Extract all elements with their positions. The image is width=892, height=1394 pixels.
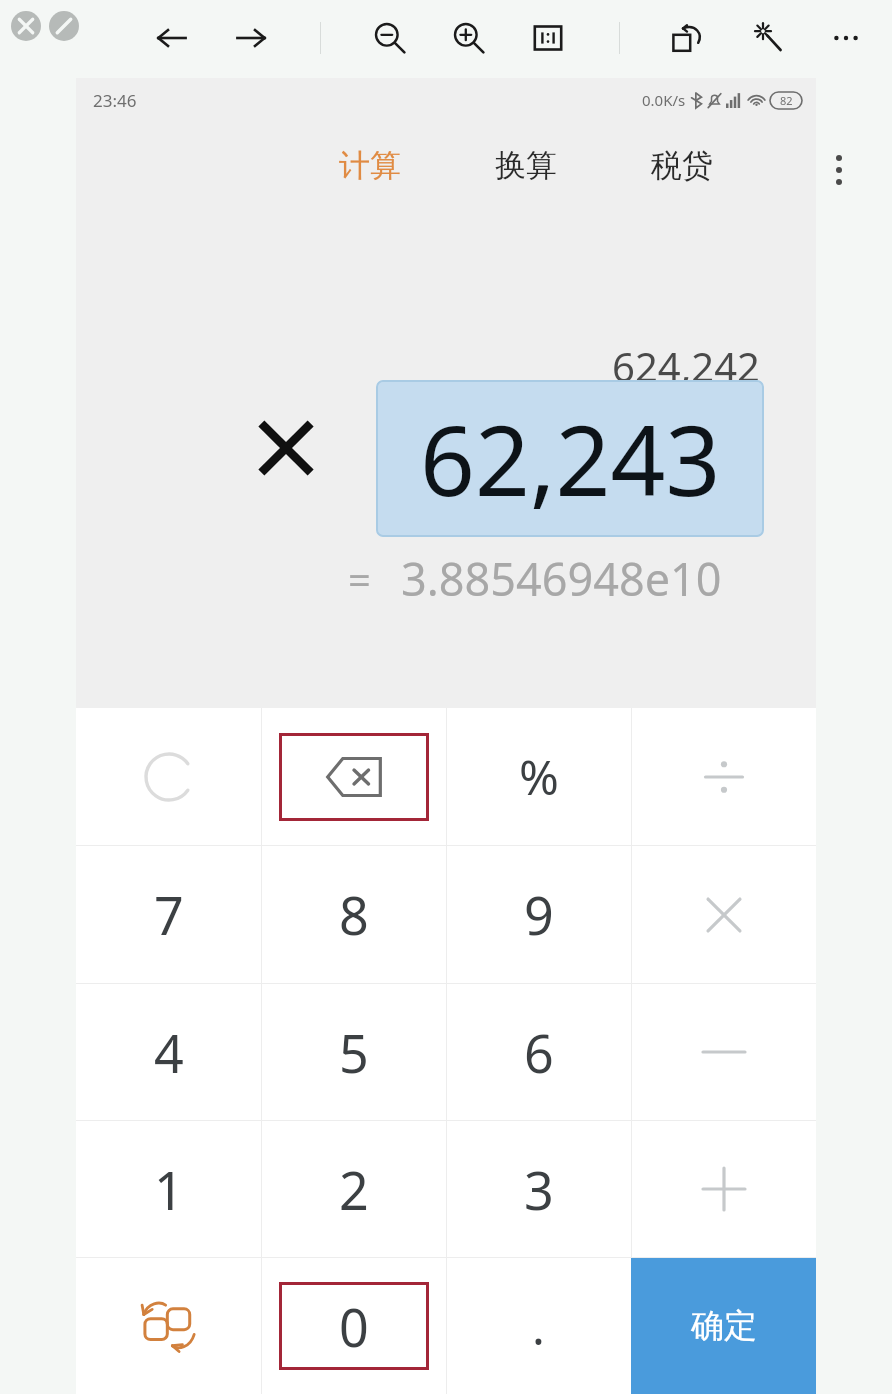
staticText: 0 — [339, 1291, 369, 1362]
button[interactable]: 7 — [76, 846, 261, 983]
button[interactable] — [631, 708, 816, 845]
button[interactable]: Actual size — [524, 14, 572, 62]
staticText: 计算 — [339, 146, 401, 185]
button[interactable]: Backspace — [261, 708, 446, 845]
staticText: 1 — [154, 1154, 184, 1225]
staticText: 确定 — [691, 1305, 757, 1347]
button[interactable]: Forward — [227, 14, 275, 62]
staticText: 3 — [524, 1154, 554, 1225]
staticText: 9 — [524, 879, 554, 950]
staticText: 624,242 — [612, 339, 760, 393]
button[interactable]: Back — [148, 14, 196, 62]
button[interactable]: 9 — [446, 846, 631, 983]
button[interactable]: 计算 — [331, 132, 409, 198]
button[interactable]: Zoom out — [366, 14, 414, 62]
button[interactable]: . — [446, 1258, 631, 1394]
button[interactable]: Effects — [743, 14, 791, 62]
staticText: 5 — [339, 1017, 369, 1088]
button[interactable]: Zoom in — [445, 14, 493, 62]
button[interactable]: Disable — [49, 11, 79, 41]
button[interactable] — [76, 708, 261, 845]
button[interactable] — [631, 1121, 816, 1257]
staticText: 62,243 — [420, 393, 721, 524]
staticText: 2 — [339, 1154, 369, 1225]
button[interactable]: 5 — [261, 984, 446, 1120]
staticText: 82 — [780, 93, 793, 108]
staticText: 税贷 — [651, 146, 713, 185]
button[interactable]: 62,243 — [376, 380, 764, 537]
staticText: 7 — [154, 879, 184, 950]
button[interactable] — [631, 846, 816, 983]
staticText: 6 — [524, 1017, 554, 1088]
staticText: 0.0K/s — [642, 90, 686, 110]
staticText: 4 — [154, 1017, 184, 1088]
button[interactable]: 换算 — [487, 132, 565, 198]
staticText: 换算 — [495, 146, 557, 185]
button[interactable]: Convert — [76, 1258, 261, 1394]
button[interactable]: Close — [11, 11, 41, 41]
button[interactable]: 8 — [261, 846, 446, 983]
button[interactable]: % — [446, 708, 631, 845]
button[interactable]: 4 — [76, 984, 261, 1120]
staticText: 23:46 — [93, 89, 137, 112]
staticText: . — [532, 1294, 545, 1359]
button[interactable]: 税贷 — [643, 132, 721, 198]
button[interactable] — [631, 984, 816, 1120]
staticText: = — [348, 552, 371, 606]
button[interactable]: 6 — [446, 984, 631, 1120]
button[interactable]: More — [813, 144, 865, 196]
staticText: 8 — [339, 879, 369, 950]
button[interactable]: Rotate — [663, 14, 711, 62]
button[interactable]: More options — [822, 14, 870, 62]
staticText: 3.88546948e10 — [401, 548, 722, 609]
button[interactable]: 3 — [446, 1121, 631, 1257]
button[interactable]: 1 — [76, 1121, 261, 1257]
button[interactable]: Confirm — [631, 1258, 816, 1394]
staticText: % — [519, 744, 559, 809]
button[interactable]: 0 — [261, 1258, 446, 1394]
button[interactable]: 2 — [261, 1121, 446, 1257]
